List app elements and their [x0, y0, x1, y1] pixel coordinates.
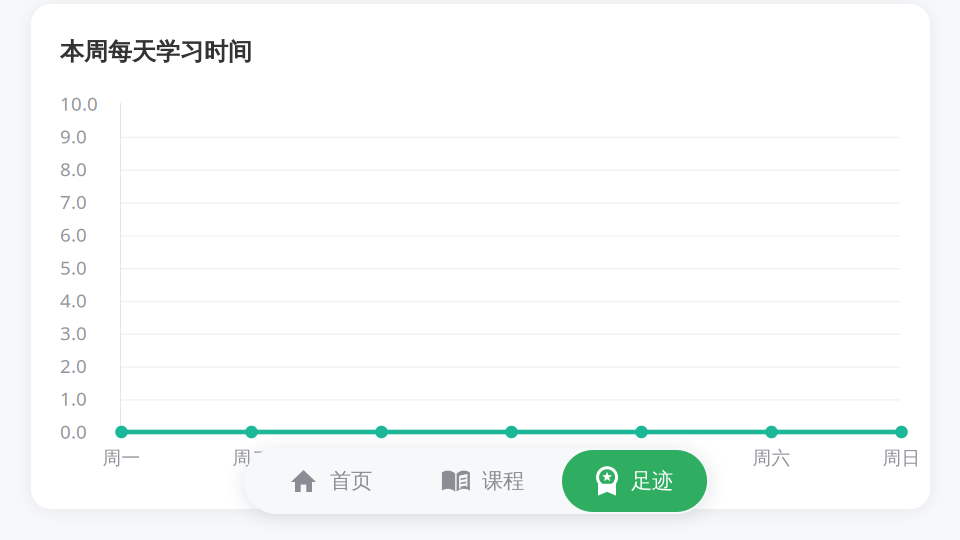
staticText: 足迹 — [631, 468, 673, 494]
staticText: 3.0 — [60, 321, 87, 345]
staticText: 周一 — [102, 446, 140, 469]
staticText: 4.0 — [60, 288, 87, 313]
staticText: 周日 — [882, 446, 920, 469]
staticText: 本周每天学习时间 — [60, 37, 252, 66]
button[interactable]: 足迹 — [562, 450, 707, 512]
staticText: 首页 — [330, 468, 372, 494]
button[interactable]: 课程 — [417, 450, 548, 512]
staticText: 2.0 — [60, 353, 87, 378]
staticText: 1.0 — [60, 386, 87, 411]
staticText: 9.0 — [60, 124, 87, 149]
staticText: 0.0 — [60, 419, 87, 444]
staticText: 8.0 — [60, 157, 87, 181]
staticText: 6.0 — [60, 222, 87, 247]
staticText: 5.0 — [60, 255, 87, 280]
staticText: 周五 — [622, 446, 660, 469]
staticText: 周二 — [232, 446, 270, 469]
staticText: 课程 — [482, 468, 524, 494]
staticText: 周六 — [752, 446, 790, 469]
staticText: 7.0 — [60, 189, 87, 214]
staticText: 10.0 — [60, 91, 98, 116]
button[interactable]: 首页 — [246, 450, 417, 512]
